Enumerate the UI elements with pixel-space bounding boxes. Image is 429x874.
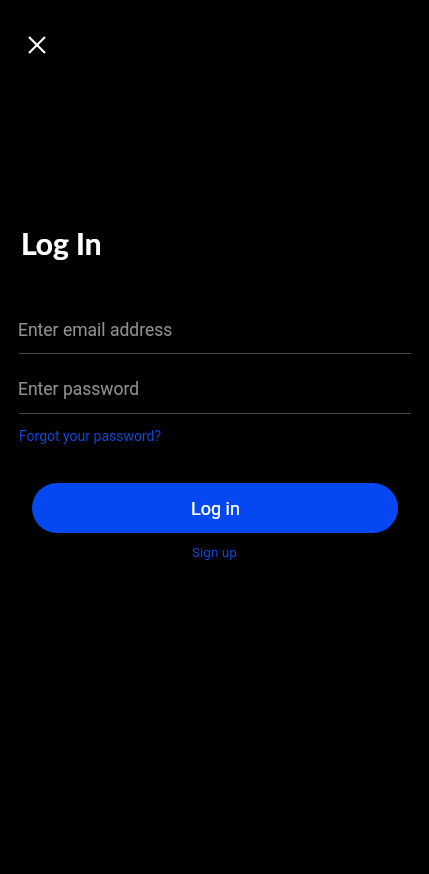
- staticText: Enter email address: [18, 320, 173, 341]
- button[interactable]: [15, 23, 59, 67]
- staticText: Log In: [21, 225, 102, 261]
- staticText: Sign up: [192, 544, 237, 560]
- button[interactable]: Log in: [32, 483, 398, 533]
- staticText: Log in: [191, 498, 240, 519]
- button[interactable]: Forgot your password?: [19, 428, 162, 444]
- staticText: Enter password: [18, 379, 140, 400]
- staticText: Forgot your password?: [19, 428, 162, 444]
- button[interactable]: Sign up: [192, 544, 237, 560]
